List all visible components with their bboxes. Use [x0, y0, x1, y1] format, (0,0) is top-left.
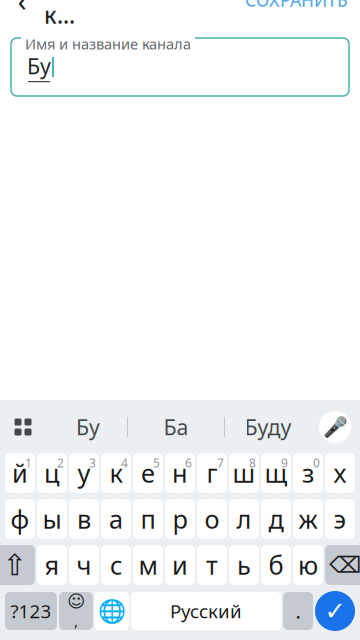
button[interactable]: Бу — [49, 405, 127, 449]
staticText: . — [295, 598, 300, 624]
staticText: т — [206, 548, 218, 582]
button[interactable]: Русский — [131, 592, 281, 630]
button[interactable]: Change language — [95, 592, 129, 630]
staticText: 4 — [121, 455, 128, 471]
button[interactable]: й — [5, 453, 35, 493]
button[interactable]: Symbols — [5, 592, 57, 630]
button[interactable]: в — [69, 499, 99, 539]
staticText: 🎤 — [322, 416, 347, 438]
staticText: л — [236, 502, 251, 536]
staticText: о — [204, 502, 219, 536]
staticText: ц — [44, 456, 60, 490]
staticText: 3 — [89, 455, 96, 471]
staticText: б — [268, 548, 283, 582]
staticText: 9 — [281, 455, 288, 471]
button[interactable]: ц — [37, 453, 67, 493]
staticText: и — [172, 548, 188, 582]
button[interactable]: у — [69, 453, 99, 493]
staticText: п — [140, 502, 155, 536]
button[interactable]: Emoji — [59, 592, 93, 630]
staticText: ‹ — [17, 0, 26, 19]
button[interactable]: п — [133, 499, 163, 539]
staticText: ⌫ — [329, 552, 360, 578]
staticText: 8 — [249, 455, 256, 471]
button[interactable]: Voice input — [319, 411, 351, 443]
button[interactable]: СОХРАНИТЬ — [245, 0, 360, 11]
button[interactable]: Ба — [128, 405, 224, 449]
staticText: с — [110, 548, 122, 582]
staticText: ч — [76, 548, 91, 582]
staticText: ж — [298, 502, 317, 536]
staticText: ш — [232, 456, 255, 490]
staticText: з — [302, 456, 314, 490]
button[interactable]: о — [197, 499, 227, 539]
button[interactable]: т — [197, 545, 227, 585]
staticText: м — [138, 548, 157, 582]
button[interactable]: Буду — [225, 405, 311, 449]
staticText: 7 — [217, 455, 224, 471]
staticText: э — [333, 502, 346, 536]
staticText: щ — [264, 456, 287, 490]
staticText: ?123 — [10, 599, 51, 623]
staticText: ✓ — [324, 597, 345, 625]
button[interactable]: Period — [283, 592, 313, 630]
staticText: 0 — [313, 455, 320, 471]
staticText: а — [109, 502, 123, 536]
button[interactable]: л — [229, 499, 259, 539]
button[interactable]: х — [325, 453, 355, 493]
button[interactable]: Done — [315, 591, 355, 631]
button[interactable]: к — [101, 453, 131, 493]
button[interactable]: э — [325, 499, 355, 539]
button[interactable]: с — [101, 545, 131, 585]
staticText: ь — [237, 548, 251, 582]
button[interactable]: Keyboard tools — [0, 405, 49, 449]
staticText: СОХРАНИТЬ — [245, 0, 348, 11]
button[interactable]: Shift — [0, 545, 35, 585]
button[interactable]: ч — [69, 545, 99, 585]
staticText: е — [141, 456, 155, 490]
staticText: у — [77, 456, 90, 490]
staticText: ☺ — [67, 591, 85, 611]
button[interactable]: ж — [293, 499, 323, 539]
button[interactable]: щ — [261, 453, 291, 493]
staticText: 1 — [25, 455, 32, 471]
staticText: ы — [42, 502, 61, 536]
staticText: д — [268, 502, 283, 536]
staticText: г — [206, 456, 217, 490]
button[interactable]: г — [197, 453, 227, 493]
button[interactable]: ь — [229, 545, 259, 585]
staticText: ф — [10, 502, 29, 536]
staticText: 2 — [57, 455, 64, 471]
button[interactable]: н — [165, 453, 195, 493]
staticText: Ба — [163, 413, 188, 441]
button[interactable]: Back — [0, 0, 44, 10]
staticText: ю — [298, 548, 318, 582]
staticText: 5 — [153, 455, 160, 471]
button[interactable]: и — [165, 545, 195, 585]
button[interactable]: р — [165, 499, 195, 539]
button[interactable]: б — [261, 545, 291, 585]
button[interactable]: з — [293, 453, 323, 493]
button[interactable]: ф — [5, 499, 35, 539]
button[interactable]: Backspace — [325, 545, 360, 585]
staticText: Бу — [76, 413, 100, 441]
staticText: 🌐 — [98, 598, 126, 624]
button[interactable]: я — [37, 545, 67, 585]
button[interactable]: е — [133, 453, 163, 493]
staticText: , — [74, 611, 78, 631]
button[interactable]: д — [261, 499, 291, 539]
staticText: й — [12, 456, 28, 490]
staticText: Буду — [244, 413, 291, 441]
button[interactable]: ы — [37, 499, 67, 539]
staticText: в — [77, 502, 91, 536]
button[interactable]: ю — [293, 545, 323, 585]
staticText: к — [109, 456, 122, 490]
button[interactable]: м — [133, 545, 163, 585]
button[interactable]: а — [101, 499, 131, 539]
staticText: Русский — [170, 599, 242, 623]
button[interactable]: ш — [229, 453, 259, 493]
staticText: Имя и название к... — [44, 0, 223, 30]
staticText: х — [333, 456, 346, 490]
staticText: Имя и название канала — [25, 34, 191, 53]
staticText: я — [44, 548, 59, 582]
